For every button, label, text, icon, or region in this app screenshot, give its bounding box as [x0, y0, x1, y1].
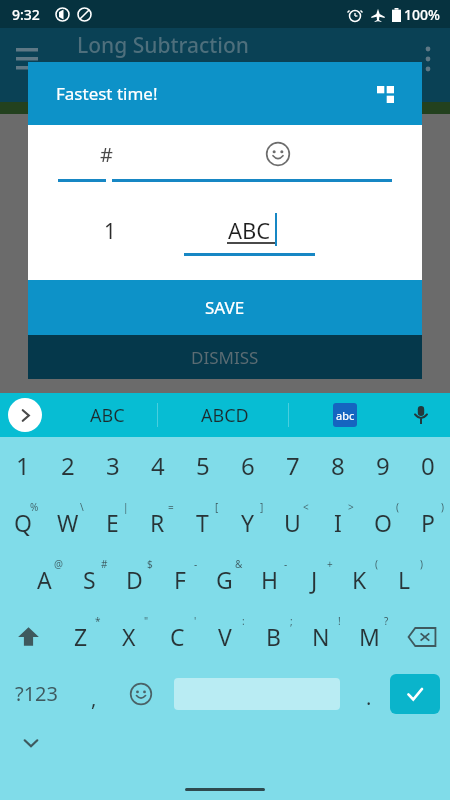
button[interactable]: Menu — [16, 44, 38, 66]
button[interactable]: A — [22, 551, 67, 608]
button[interactable]: 5 — [180, 437, 225, 494]
staticText: # — [101, 557, 108, 571]
button[interactable]: T — [180, 494, 225, 551]
staticText: ? — [384, 614, 389, 628]
button[interactable]: ?123 — [0, 665, 72, 722]
button[interactable]: 3 — [90, 437, 135, 494]
button[interactable]: I — [315, 494, 360, 551]
button[interactable]: 1 — [0, 437, 45, 494]
staticText: W — [57, 507, 79, 538]
button[interactable]: Voice input — [406, 400, 436, 430]
button[interactable]: Y — [225, 494, 270, 551]
staticText: 5 — [196, 449, 210, 482]
button[interactable]: X — [105, 608, 153, 665]
staticText: F — [174, 564, 186, 595]
button[interactable]: Z — [57, 608, 105, 665]
button[interactable]: Backspace — [393, 608, 450, 665]
staticText: K — [352, 564, 367, 595]
staticText: : — [242, 614, 245, 628]
button[interactable]: H — [247, 551, 292, 608]
staticText: 3 — [106, 449, 120, 482]
staticText: SAVE — [205, 296, 245, 319]
button[interactable]: Expand toolbar — [8, 398, 42, 432]
button[interactable]: W — [45, 494, 90, 551]
button[interactable]: L — [382, 551, 427, 608]
button[interactable]: O — [360, 494, 405, 551]
staticText: \ — [80, 500, 84, 514]
button[interactable]: G — [202, 551, 247, 608]
button[interactable]: 2 — [45, 437, 90, 494]
staticText: C — [170, 621, 185, 652]
button[interactable]: 8 — [315, 437, 360, 494]
button[interactable]: 6 — [225, 437, 270, 494]
staticText: @ — [54, 557, 63, 571]
staticText: [ — [215, 500, 219, 514]
staticText: Z — [74, 621, 88, 652]
staticText: T — [196, 507, 209, 538]
button[interactable]: V — [201, 608, 249, 665]
staticText: E — [106, 507, 119, 538]
staticText: > — [348, 500, 354, 514]
button[interactable]: K — [337, 551, 382, 608]
button[interactable]: , — [72, 665, 116, 722]
staticText: P — [421, 507, 435, 538]
staticText: ) — [441, 500, 444, 514]
button[interactable]: abc mode — [333, 403, 357, 427]
staticText: ! — [338, 614, 341, 628]
button[interactable]: 0 — [405, 437, 450, 494]
staticText: 9 — [376, 449, 390, 482]
button[interactable]: ABC — [55, 393, 160, 437]
staticText: * — [95, 614, 101, 628]
button[interactable]: Change layout — [370, 79, 400, 109]
staticText: L — [398, 564, 411, 595]
staticText: 0 — [421, 449, 435, 482]
button[interactable]: Fastest time! — [28, 62, 422, 125]
button[interactable]: N — [297, 608, 345, 665]
button[interactable]: U — [270, 494, 315, 551]
staticText: N — [312, 621, 330, 652]
button[interactable]: DISMISS — [28, 335, 422, 379]
button[interactable]: More options — [418, 44, 438, 64]
staticText: % — [30, 500, 39, 514]
button[interactable]: J — [292, 551, 337, 608]
staticText: M — [359, 621, 380, 652]
staticText: . — [366, 684, 372, 711]
button[interactable]: Emoji — [116, 665, 166, 722]
staticText: < — [303, 500, 309, 514]
staticText: V — [218, 621, 232, 652]
button[interactable]: P — [405, 494, 450, 551]
button[interactable]: F — [157, 551, 202, 608]
staticText: B — [266, 621, 281, 652]
button[interactable]: Q — [0, 494, 45, 551]
button[interactable]: Shift — [0, 608, 57, 665]
button[interactable]: 7 — [270, 437, 315, 494]
staticText: 4 — [151, 449, 165, 482]
button[interactable]: B — [249, 608, 297, 665]
staticText: Y — [241, 507, 255, 538]
button[interactable]: . — [348, 665, 390, 722]
button[interactable]: E — [90, 494, 135, 551]
button[interactable]: ABCD — [165, 393, 285, 437]
staticText: 9:32 — [12, 5, 40, 24]
button[interactable]: R — [135, 494, 180, 551]
button[interactable]: S — [67, 551, 112, 608]
staticText: DISMISS — [191, 346, 259, 369]
button[interactable]: 9 — [360, 437, 405, 494]
button[interactable]: 4 — [135, 437, 180, 494]
staticText: = — [168, 500, 174, 514]
staticText: S — [83, 564, 96, 595]
staticText: I — [334, 507, 342, 538]
staticText: - — [194, 557, 198, 571]
button[interactable]: D — [112, 551, 157, 608]
button[interactable]: Enter — [390, 674, 440, 714]
staticText: J — [311, 564, 318, 595]
button[interactable]: M — [345, 608, 393, 665]
button[interactable]: SAVE — [28, 280, 422, 335]
staticText: - — [284, 557, 288, 571]
staticText: # — [100, 141, 113, 168]
button[interactable]: Hide keyboard — [22, 734, 40, 752]
staticText: ABCD — [201, 403, 249, 428]
staticText: ) — [420, 557, 423, 571]
button[interactable]: C — [153, 608, 201, 665]
